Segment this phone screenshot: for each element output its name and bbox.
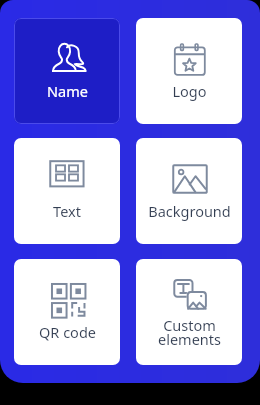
staticText: Custom elements — [158, 315, 221, 350]
staticText: Logo — [172, 81, 207, 101]
button[interactable]: People — [14, 18, 120, 124]
button[interactable]: Logo — [136, 18, 242, 124]
staticText: QR code — [39, 322, 96, 342]
staticText: Background — [148, 201, 231, 221]
button[interactable]: Text — [14, 138, 120, 244]
button[interactable]: QR code — [14, 259, 120, 365]
button[interactable]: Background — [136, 138, 242, 244]
staticText: Name — [47, 81, 88, 101]
button[interactable]: Custom elements — [136, 259, 242, 365]
staticText: Text — [53, 201, 81, 221]
